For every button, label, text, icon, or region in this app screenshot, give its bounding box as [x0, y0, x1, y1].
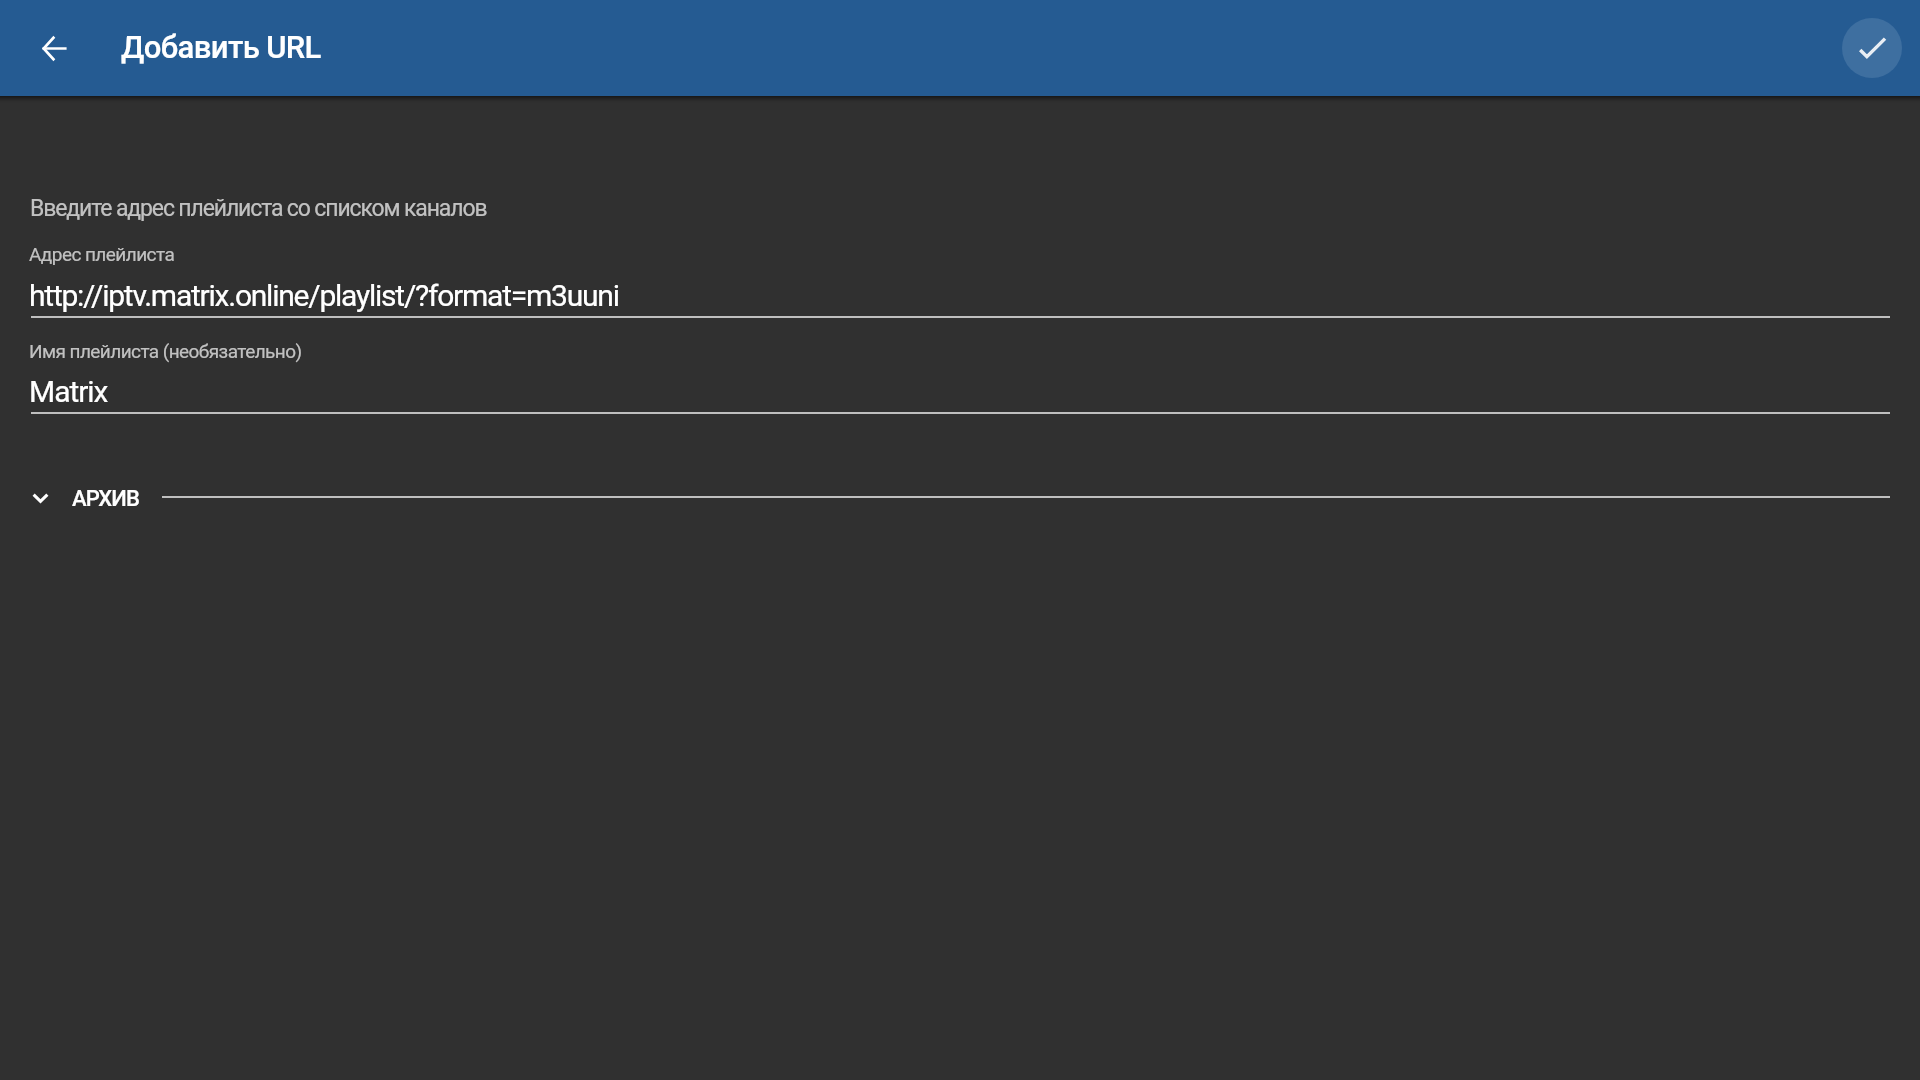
button[interactable]: Save: [1842, 18, 1902, 78]
button[interactable]: Back: [30, 24, 78, 72]
staticText: АРХИВ: [72, 486, 139, 512]
button[interactable]: АРХИВ: [0, 477, 1920, 517]
staticText: http://iptv.matrix.online/playlist/?form…: [29, 278, 619, 313]
staticText: Введите адрес плейлиста со списком канал…: [30, 195, 487, 222]
button[interactable]: Адрес плейлиста: [0, 236, 1920, 320]
staticText: Адрес плейлиста: [29, 243, 175, 265]
button[interactable]: Имя плейлиста (необязательно): [0, 332, 1920, 416]
staticText: Имя плейлиста (необязательно): [29, 340, 302, 362]
staticText: Matrix: [29, 374, 108, 409]
staticText: Добавить URL: [121, 29, 321, 65]
